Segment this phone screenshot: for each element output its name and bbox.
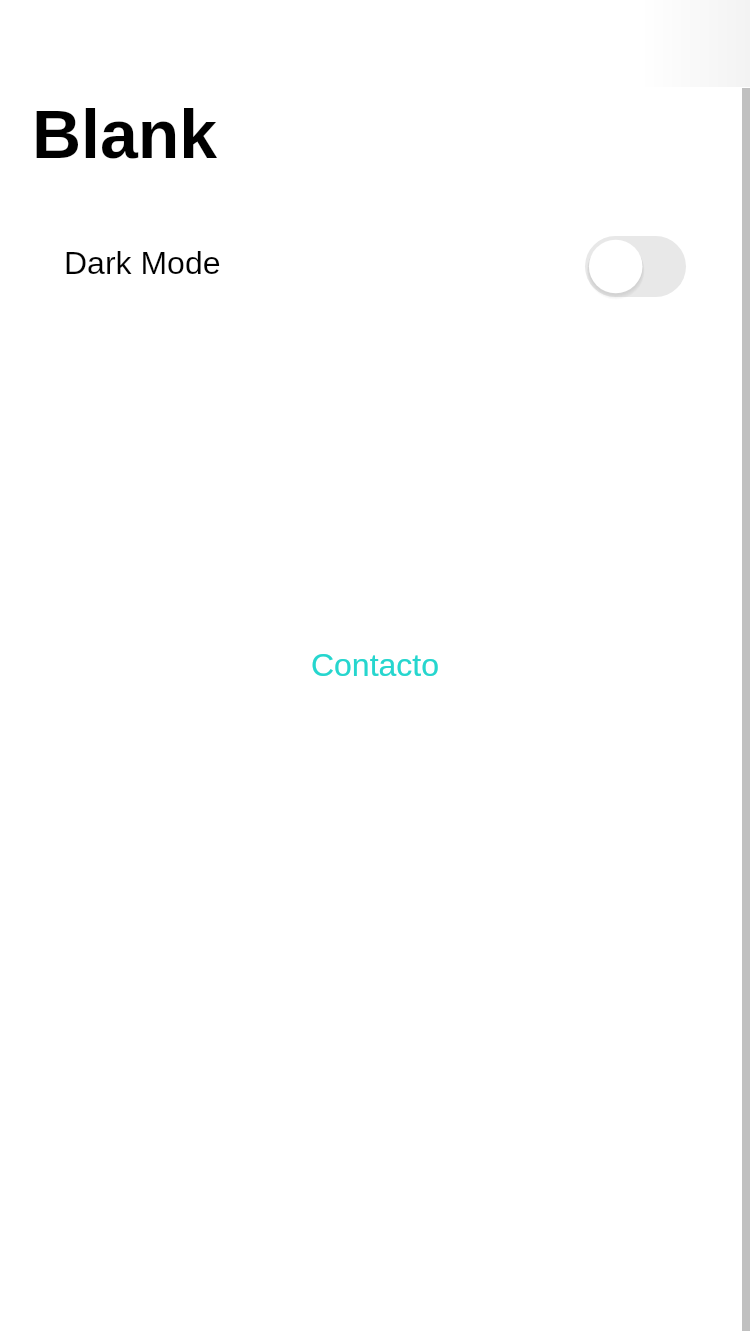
staticText: Blank — [32, 96, 218, 172]
button[interactable]: Contacto — [0, 647, 750, 683]
staticText: Dark Mode — [64, 245, 221, 281]
button[interactable]: Dark Mode — [64, 232, 686, 294]
button[interactable]: Toggle dark mode — [585, 236, 686, 298]
